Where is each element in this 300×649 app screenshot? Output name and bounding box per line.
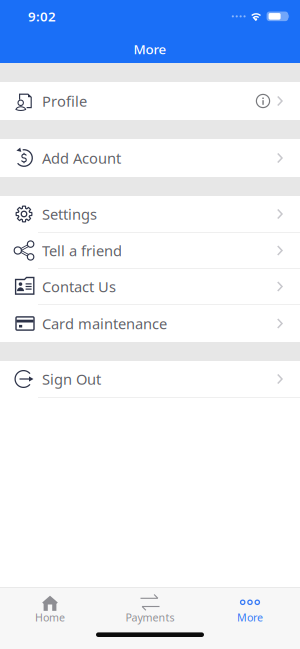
staticText: Sign Out (42, 369, 101, 389)
staticText: Home (35, 610, 65, 624)
staticText: Add Acount (42, 148, 121, 168)
button[interactable]: Profile (0, 82, 300, 120)
button[interactable]: Card maintenance (0, 305, 300, 342)
button[interactable]: Sign Out (0, 361, 300, 398)
button[interactable]: Home (0, 593, 100, 626)
button[interactable]: More (200, 593, 300, 626)
staticText: Contact Us (42, 277, 116, 296)
button[interactable]: Tell a friend (0, 233, 300, 269)
staticText: Card maintenance (42, 314, 167, 333)
staticText: Settings (42, 204, 97, 224)
button[interactable]: Settings (0, 196, 300, 233)
staticText: Payments (125, 610, 174, 624)
staticText: Tell a friend (42, 241, 122, 260)
staticText: More (237, 610, 263, 624)
staticText: More (133, 40, 166, 58)
staticText: Profile (42, 91, 87, 111)
button[interactable]: Payments (100, 593, 200, 626)
button[interactable]: Contact Us (0, 269, 300, 305)
staticText: 9:02 (28, 7, 56, 25)
button[interactable]: Add Acount (0, 139, 300, 177)
